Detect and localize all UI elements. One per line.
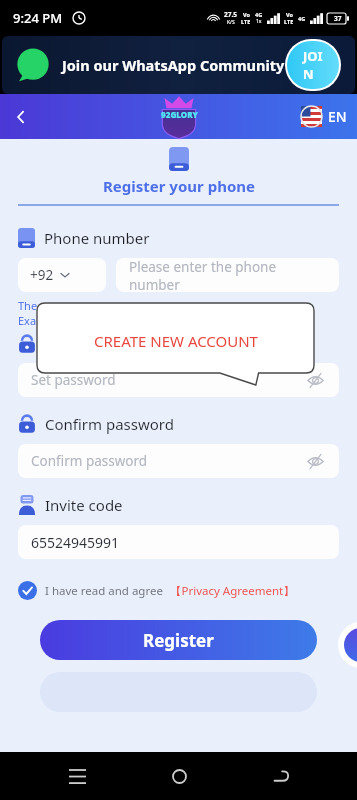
button[interactable]: 【Privacy Agreement】 <box>170 583 295 599</box>
staticText: Register <box>143 629 214 652</box>
staticText: 37 <box>334 14 342 23</box>
staticText: Confirm password <box>45 414 174 434</box>
staticText: 27.5 <box>224 10 237 19</box>
button[interactable]: Confirm password <box>18 444 339 478</box>
staticText: 65524945991 <box>31 533 120 552</box>
button[interactable]: 65524945991 <box>18 525 339 559</box>
button[interactable]: I have read and agree <box>18 581 295 600</box>
staticText: Please enter the phone number <box>129 258 326 292</box>
staticText: Register your phone <box>103 176 255 196</box>
button[interactable]: Register <box>40 620 317 660</box>
button[interactable]: Support <box>338 622 357 668</box>
button[interactable]: EN <box>301 94 347 139</box>
button[interactable]: +92 <box>18 258 106 292</box>
staticText: 9:24 PM <box>13 9 63 27</box>
button[interactable]: Register your phone <box>0 147 357 204</box>
button[interactable]: Recents <box>53 752 101 800</box>
button[interactable]: Home <box>155 752 203 800</box>
button[interactable]: JOIN <box>287 41 339 89</box>
staticText: JOIN <box>303 47 323 83</box>
staticText: I have read and agree <box>45 583 163 599</box>
staticText: Exa <box>18 313 37 328</box>
staticText: The <box>18 298 38 313</box>
staticText: LTE <box>284 18 294 25</box>
staticText: 92GLORY <box>161 109 198 120</box>
button[interactable]: Toggle password visibility <box>304 369 326 391</box>
staticText: LTE <box>241 18 251 25</box>
button[interactable]: Set password <box>18 363 339 397</box>
staticText: 1x <box>256 18 262 25</box>
staticText: Set password <box>31 371 116 389</box>
staticText: Vo <box>286 11 293 18</box>
button[interactable]: Back <box>0 94 42 139</box>
staticText: CREATE NEW ACCOUNT <box>94 331 258 351</box>
staticText: Join our WhatsApp Community <box>62 55 285 75</box>
staticText: K/S <box>227 19 235 26</box>
staticText: Invite code <box>45 495 123 515</box>
staticText: EN <box>328 107 347 126</box>
button[interactable]: Please enter the phone number <box>116 258 339 292</box>
staticText: Phone number <box>44 228 150 248</box>
staticText: Vo <box>243 11 250 18</box>
button[interactable]: Back <box>256 752 304 800</box>
staticText: +92 <box>30 266 54 284</box>
staticText: 4G <box>298 15 306 22</box>
staticText: 4G <box>255 11 263 18</box>
staticText: Confirm password <box>31 452 148 470</box>
button[interactable]: Toggle password visibility <box>304 450 326 472</box>
button[interactable]: Join our WhatsApp Community <box>2 36 355 94</box>
